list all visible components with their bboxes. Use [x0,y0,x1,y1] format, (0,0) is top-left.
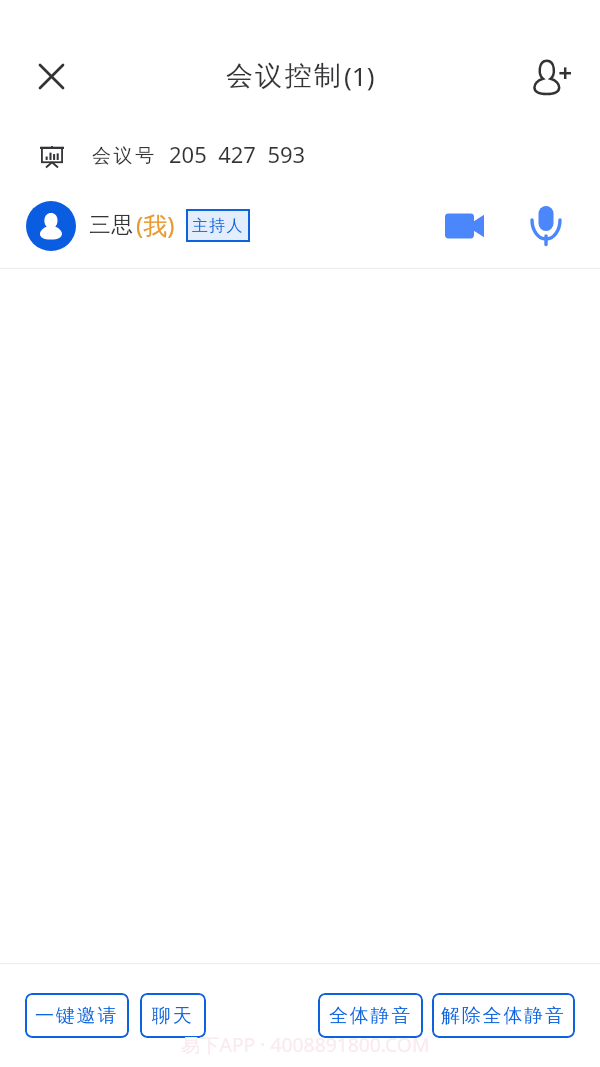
staticText: 解除全体静音 [441,1004,566,1028]
staticText: 会议号 [92,144,157,168]
button[interactable]: 全体静音 [318,993,423,1038]
staticText: 主持人 [192,216,244,236]
staticText: 会议控制 [226,59,344,93]
staticText: 一键邀请 [35,1004,119,1028]
staticText: 三思 [89,211,133,238]
button[interactable]: 解除全体静音 [432,993,575,1038]
staticText: 205 427 593 [169,139,306,169]
staticText: (我) [136,208,175,241]
button[interactable]: 一键邀请 [25,993,129,1038]
button[interactable]: 三思 [0,184,600,268]
button[interactable]: Add participant [526,52,576,102]
staticText: (1) [344,58,375,93]
staticText: 易下APP · 4008891800.COM [181,1031,430,1057]
staticText: 聊天 [152,1004,194,1028]
button[interactable]: Camera [437,198,493,254]
button[interactable]: Close [26,51,76,101]
button[interactable]: 聊天 [140,993,206,1038]
button[interactable]: Microphone [518,198,574,254]
staticText: 全体静音 [329,1004,413,1028]
